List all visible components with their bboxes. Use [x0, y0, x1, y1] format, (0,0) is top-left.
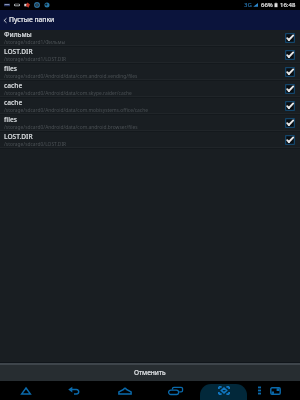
button[interactable]: Отменить [0, 365, 300, 381]
staticText: /storage/sdcard1/Фильмы [4, 39, 66, 46]
staticText: LOST.DIR [4, 47, 33, 56]
staticText: 16:48 [280, 1, 296, 9]
button[interactable]: Selected [285, 135, 295, 145]
staticText: /storage/sdcard0/Android/data/com.skype.… [4, 90, 132, 97]
button[interactable]: Selected [285, 118, 295, 128]
button[interactable]: Screenshot [264, 381, 286, 400]
button[interactable]: Selected [285, 84, 295, 94]
staticText: /storage/sdcard1/LOST.DIR [4, 56, 67, 63]
button[interactable]: Selected [285, 33, 295, 43]
staticText: cache [4, 98, 23, 107]
staticText: /storage/sdcard0/Android/data/com.mobisy… [4, 107, 148, 114]
button[interactable]: LOST.DIR [0, 47, 300, 64]
staticText: /storage/sdcard0/Android/data/com.androi… [4, 73, 138, 80]
staticText: Пустые папки [9, 15, 55, 24]
button[interactable]: LOST.DIR [0, 132, 300, 149]
button[interactable]: files [0, 115, 300, 132]
button[interactable]: Selected [285, 67, 295, 77]
button[interactable]: Back up [3, 381, 49, 400]
button[interactable]: files [0, 64, 300, 81]
button[interactable]: Multi window [202, 381, 246, 400]
button[interactable]: Selected [285, 101, 295, 111]
button[interactable]: Home [102, 381, 148, 400]
button[interactable]: cache [0, 81, 300, 98]
button[interactable]: Back [51, 381, 97, 400]
staticText: LOST.DIR [4, 132, 33, 141]
button[interactable]: Пустые папки [0, 10, 300, 30]
button[interactable]: Selected [285, 50, 295, 60]
staticText: /storage/sdcard0/Android/data/com.androi… [4, 124, 138, 131]
staticText: Фильмы [4, 30, 32, 39]
staticText: Отменить [134, 368, 166, 377]
button[interactable]: cache [0, 98, 300, 115]
staticText: 66% [261, 1, 273, 9]
button[interactable]: Recent apps [152, 381, 198, 400]
button[interactable]: Фильмы [0, 30, 300, 47]
staticText: files [4, 64, 17, 73]
staticText: cache [4, 81, 23, 90]
staticText: 3G [244, 1, 252, 9]
staticText: /storage/sdcard0/LOST.DIR [4, 141, 67, 148]
button[interactable]: More options [252, 381, 266, 400]
staticText: files [4, 115, 17, 124]
